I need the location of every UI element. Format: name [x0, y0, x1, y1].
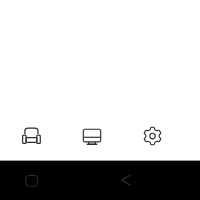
button[interactable]: Settings	[133, 117, 171, 155]
button[interactable]: Back	[113, 167, 139, 193]
button[interactable]: Furniture	[12, 116, 50, 154]
button[interactable]: Display	[73, 118, 111, 156]
button[interactable]: Home	[18, 167, 44, 193]
